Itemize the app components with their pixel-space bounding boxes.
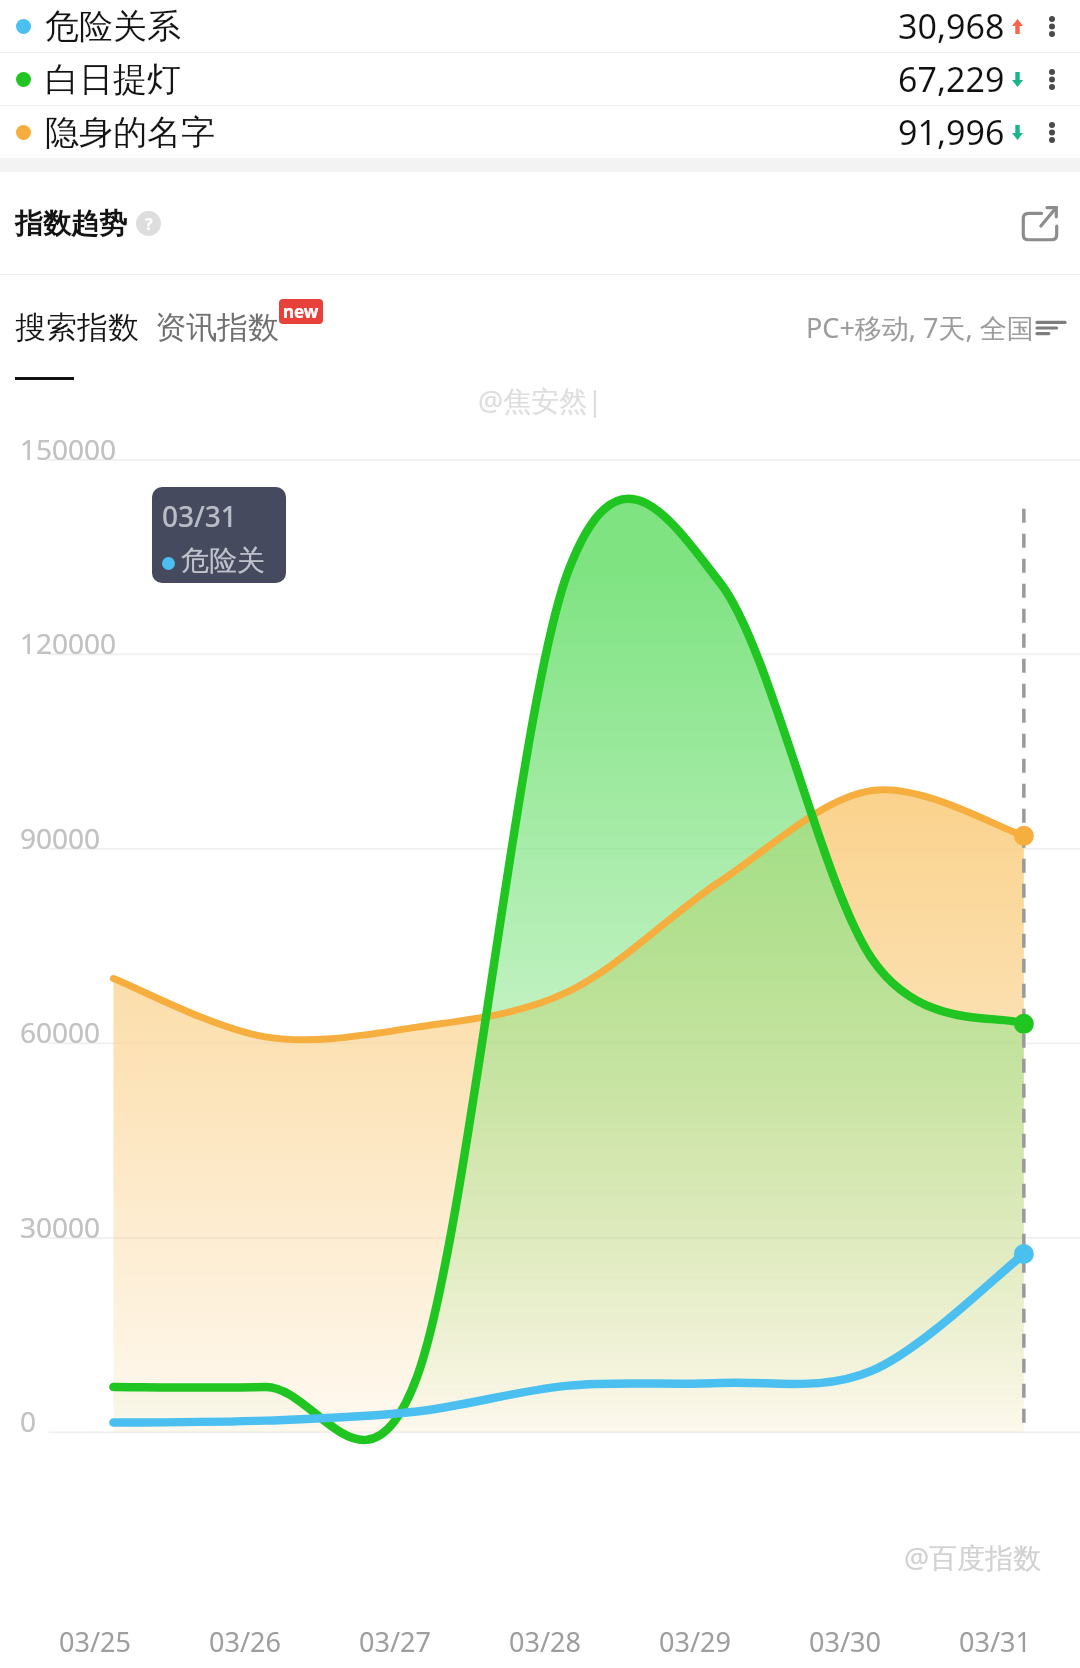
staticText: 03/25 <box>59 1623 131 1660</box>
staticText: 03/26 <box>209 1623 281 1660</box>
staticText: 150000 <box>20 430 117 468</box>
staticText: @百度指数 <box>904 1538 1042 1576</box>
staticText: 资讯指数 <box>155 308 279 347</box>
staticText: 隐身的名字 <box>45 111 215 154</box>
staticText: 03/31 <box>162 497 237 535</box>
staticText: 30000 <box>20 1208 101 1246</box>
button[interactable]: 搜索指数 <box>15 275 139 380</box>
staticText: 危险关系 <box>45 5 181 48</box>
staticText: @焦安然| <box>478 381 603 419</box>
button[interactable]: PC+移动, 7天, 全国 <box>806 275 1065 380</box>
button[interactable]: 更多 <box>1038 12 1066 40</box>
staticText: 0 <box>20 1402 37 1440</box>
staticText: 120000 <box>20 624 117 662</box>
staticText: new <box>283 300 319 323</box>
staticText: 90000 <box>20 819 101 857</box>
button[interactable]: 更多 <box>1038 65 1066 93</box>
staticText: 67,229 <box>898 56 1005 102</box>
button[interactable]: 更多 <box>1038 118 1066 146</box>
staticText: 60000 <box>20 1013 101 1051</box>
staticText: 03/29 <box>659 1623 731 1660</box>
staticText: 91,996 <box>898 109 1005 155</box>
staticText: 指数趋势 <box>15 206 127 241</box>
button[interactable]: 资讯指数 <box>155 275 323 380</box>
staticText: 03/30 <box>809 1623 881 1660</box>
button[interactable]: 白日提灯 <box>0 53 1080 105</box>
button[interactable]: 隐身的名字 <box>0 106 1080 158</box>
button[interactable]: Share <box>1015 198 1065 248</box>
button[interactable]: 03/31 <box>152 487 286 583</box>
staticText: 03/28 <box>509 1623 581 1660</box>
staticText: 白日提灯 <box>45 58 181 101</box>
staticText: 搜索指数 <box>15 308 139 347</box>
staticText: 03/31 <box>959 1623 1031 1660</box>
button[interactable]: 帮助 <box>136 211 161 236</box>
staticText: 03/27 <box>359 1623 431 1660</box>
button[interactable]: 危险关系 <box>0 0 1080 52</box>
staticText: PC+移动, 7天, 全国 <box>806 309 1034 346</box>
staticText: ? <box>145 213 153 235</box>
staticText: 30,968 <box>898 3 1005 49</box>
staticText: 危险关系:30968 <box>181 543 286 583</box>
